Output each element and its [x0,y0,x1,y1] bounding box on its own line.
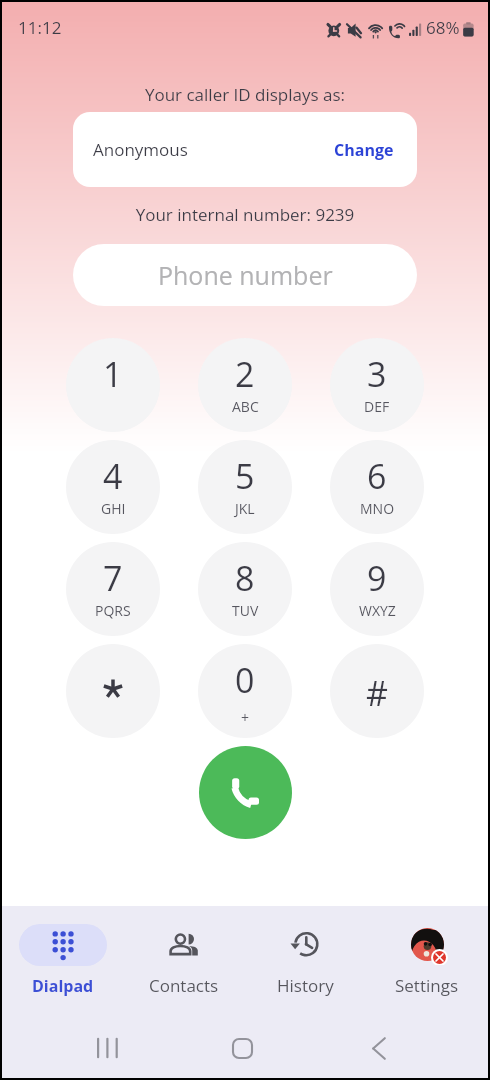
staticText: 6 [367,453,387,499]
staticText: Your internal number: 9239 [2,203,488,226]
button[interactable]: Change [334,139,394,161]
button[interactable]: 4 [66,440,160,534]
staticText: DEF [364,397,390,416]
button[interactable]: 5 [198,440,292,534]
staticText: 2 [235,351,255,397]
button[interactable]: Call [199,746,292,839]
button[interactable]: Anonymous [73,112,417,187]
button[interactable]: 3 [330,338,424,432]
button[interactable]: 0 [198,644,292,738]
staticText: PQRS [95,601,131,620]
staticText: 11:12 [18,16,62,39]
button[interactable]: Home [229,1034,256,1062]
staticText: Settings [395,974,459,997]
button[interactable]: History [244,923,366,997]
staticText: MNO [360,499,395,518]
staticText: GHI [101,499,126,518]
staticText: Your caller ID displays as: [2,83,488,106]
staticText: ABC [232,397,259,416]
button[interactable] [66,644,160,738]
button[interactable]: Settings [366,923,488,997]
button[interactable]: Phone number [73,244,417,306]
staticText: # [366,670,388,716]
staticText: WXYZ [359,601,396,620]
button[interactable]: 7 [66,542,160,636]
staticText: 68% [426,16,460,39]
button[interactable]: 2 [198,338,292,432]
button[interactable]: Dialpad [2,924,123,997]
staticText: 1 [103,351,123,397]
staticText: + [241,708,250,727]
staticText: History [277,974,334,997]
staticText: Change [334,139,394,161]
staticText: TUV [232,601,259,620]
staticText: 9 [367,555,387,601]
staticText: 7 [103,555,123,601]
staticText: 8 [235,555,255,601]
button[interactable]: Recents [94,1034,120,1062]
staticText: 0 [235,657,255,703]
button[interactable]: Back [365,1034,392,1062]
button[interactable]: 1 [66,338,160,432]
staticText: Dialpad [32,975,94,997]
button[interactable]: Contacts [123,923,244,997]
button[interactable]: 6 [330,440,424,534]
staticText: Anonymous [93,138,188,161]
staticText: 4 [103,453,123,499]
button[interactable]: # [330,644,424,738]
staticText: JKL [235,499,255,518]
staticText: 5 [235,453,255,499]
staticText: Contacts [149,974,219,997]
staticText: 3 [367,351,387,397]
button[interactable]: 8 [198,542,292,636]
button[interactable]: 9 [330,542,424,636]
staticText: Phone number [158,258,333,292]
